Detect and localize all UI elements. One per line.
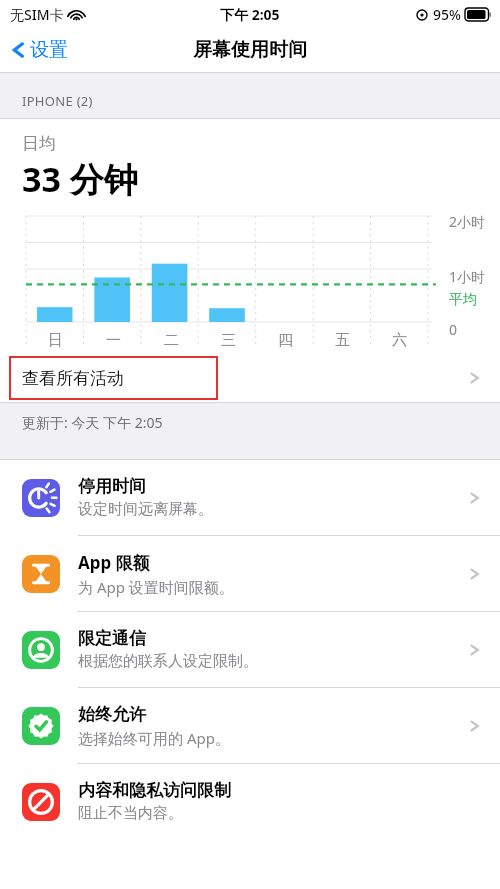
staticText: 无SIM卡 [10, 5, 64, 24]
button[interactable]: 始终允许 [0, 688, 500, 763]
staticText: 95% [433, 5, 461, 24]
staticText: 停用时间 [78, 476, 146, 497]
staticText: 日均 [22, 133, 56, 154]
staticText: 屏幕使用时间 [193, 38, 307, 62]
staticText: 一 [106, 331, 121, 350]
staticText: 始终允许 [78, 704, 146, 725]
staticText: 设定时间远离屏幕。 [78, 500, 213, 519]
staticText: 下午 2:05 [220, 5, 280, 24]
staticText: 选择始终可用的 App。 [78, 728, 230, 748]
staticText: 内容和隐私访问限制 [78, 780, 231, 801]
button[interactable]: 限定通信 [0, 612, 500, 687]
staticText: 平均 [449, 291, 477, 309]
staticText: 设置 [30, 38, 68, 62]
button[interactable]: App 限额 [0, 536, 500, 611]
staticText: 33 分钟 [22, 156, 138, 202]
staticText: 0 [449, 320, 458, 339]
staticText: 为 App 设置时间限额。 [78, 577, 234, 597]
button[interactable]: 设置 [0, 34, 78, 66]
button[interactable]: 停用时间 [0, 460, 500, 535]
staticText: 五 [335, 331, 350, 350]
staticText: IPHONE (2) [22, 92, 93, 110]
staticText: 2小时 [449, 212, 486, 231]
button[interactable]: 查看所有活动 [0, 354, 500, 402]
staticText: 阻止不当内容。 [78, 804, 183, 823]
staticText: 查看所有活动 [22, 368, 124, 389]
staticText: 限定通信 [78, 628, 146, 649]
staticText: 根据您的联系人设定限制。 [78, 652, 258, 671]
staticText: 1小时 [449, 267, 486, 286]
staticText: App 限额 [78, 551, 150, 574]
staticText: 二 [164, 331, 179, 350]
button[interactable]: 内容和隐私访问限制 [0, 764, 500, 839]
staticText: 六 [392, 331, 407, 350]
staticText: 更新于: 今天 下午 2:05 [22, 413, 163, 432]
staticText: 三 [221, 331, 236, 350]
staticText: 四 [278, 331, 293, 350]
staticText: 日 [48, 331, 63, 350]
